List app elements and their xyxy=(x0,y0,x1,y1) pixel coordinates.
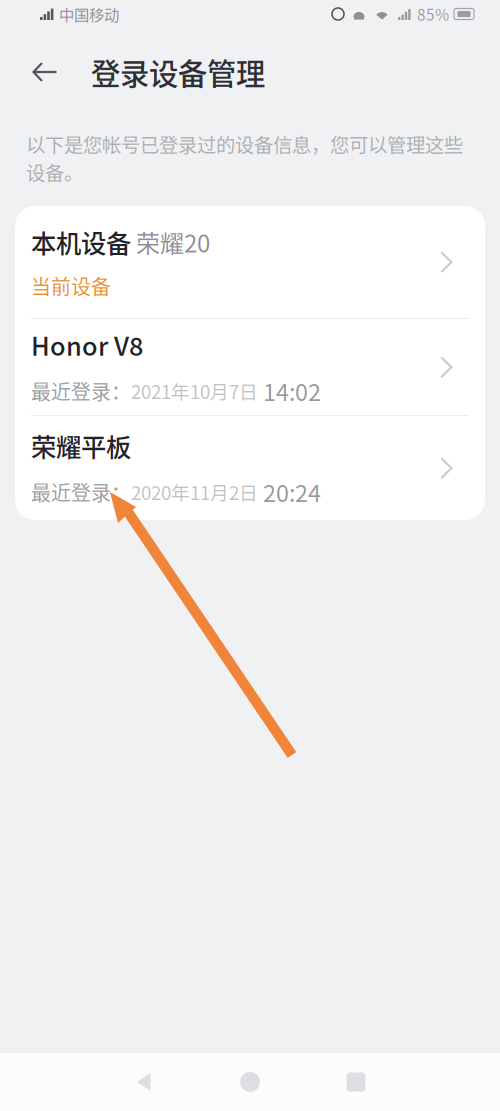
staticText: Honor V8 xyxy=(31,326,143,363)
button[interactable]: Back xyxy=(91,1053,197,1111)
staticText: 最近登录： xyxy=(31,376,131,405)
staticText: 本机设备 xyxy=(31,224,131,260)
staticText: 荣耀平板 xyxy=(31,427,131,464)
button[interactable]: Honor V8 xyxy=(15,319,485,415)
staticText: 2021年10月7日 xyxy=(131,377,258,404)
button[interactable]: Home xyxy=(197,1053,303,1111)
staticText: 荣耀20 xyxy=(131,225,210,259)
staticText: 14:02 xyxy=(258,374,321,408)
staticText: 85% xyxy=(417,3,449,25)
button[interactable]: Back xyxy=(25,52,65,92)
staticText: 中国移动 xyxy=(59,3,119,25)
button[interactable]: 荣耀平板 xyxy=(15,416,485,520)
staticText: 当前设备 xyxy=(31,271,111,300)
staticText: 以下是您帐号已登录过的设备信息，您可以管理这些设备。 xyxy=(26,130,463,186)
staticText: 2020年11月2日 xyxy=(131,478,258,505)
staticText: 20:24 xyxy=(258,475,321,509)
button[interactable]: Recents xyxy=(303,1053,409,1111)
staticText: 登录设备管理 xyxy=(91,51,265,93)
button[interactable]: 本机设备 xyxy=(15,206,485,318)
staticText: 最近登录： xyxy=(31,477,131,506)
